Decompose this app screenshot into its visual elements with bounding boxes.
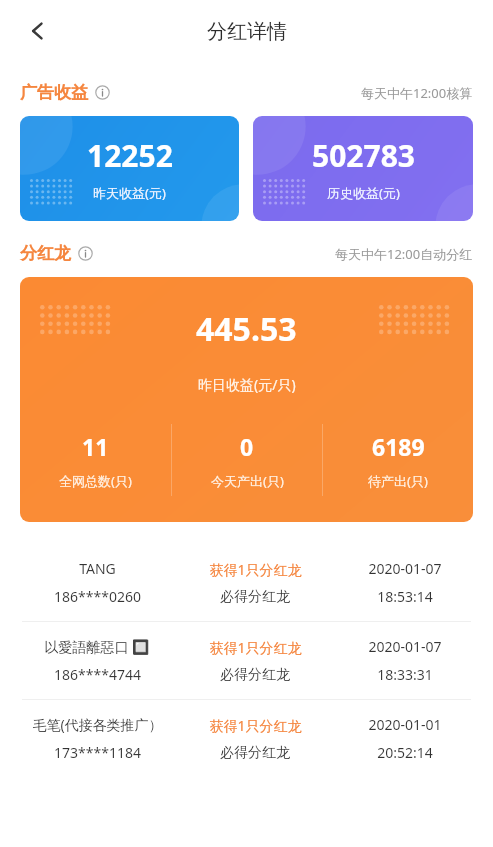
- button[interactable]: 12252: [20, 116, 239, 221]
- staticText: 分红详情: [207, 19, 287, 44]
- staticText: 历史收益(元): [327, 184, 400, 202]
- staticText: 以愛語離惡口 🔲: [44, 637, 150, 656]
- staticText: 每天中午12:00核算: [361, 84, 473, 102]
- staticText: 毛笔(代接各类推广）: [32, 715, 163, 734]
- button[interactable]: TANG: [0, 544, 493, 622]
- staticText: 每天中午12:00自动分红: [335, 245, 473, 263]
- staticText: 获得1只分红龙: [209, 560, 302, 579]
- button[interactable]: Back: [14, 7, 62, 55]
- button[interactable]: Info about 广告收益: [95, 85, 110, 100]
- staticText: 昨日收益(元/只): [198, 375, 296, 394]
- staticText: 0: [240, 431, 254, 462]
- staticText: 全网总数(只): [59, 472, 132, 490]
- staticText: 18:53:14: [377, 587, 433, 606]
- staticText: 20:52:14: [377, 743, 433, 762]
- staticText: TANG: [79, 559, 116, 578]
- staticText: 分红龙: [20, 243, 71, 264]
- staticText: 173****1184: [54, 743, 141, 762]
- staticText: 2020-01-07: [368, 637, 442, 656]
- staticText: 11: [82, 431, 109, 462]
- button[interactable]: 毛笔(代接各类推广）: [0, 700, 493, 777]
- staticText: 必得分红龙: [220, 744, 290, 762]
- button[interactable]: Info about 分红龙: [78, 246, 93, 261]
- staticText: 获得1只分红龙: [209, 638, 302, 657]
- staticText: 待产出(只): [368, 472, 428, 490]
- staticText: 502783: [312, 135, 415, 176]
- staticText: 2020-01-01: [368, 715, 442, 734]
- staticText: 186****0260: [54, 587, 141, 606]
- staticText: 必得分红龙: [220, 666, 290, 684]
- staticText: 必得分红龙: [220, 588, 290, 606]
- staticText: 2020-01-07: [368, 559, 442, 578]
- staticText: 今天产出(只): [211, 472, 284, 490]
- button[interactable]: 502783: [253, 116, 473, 221]
- staticText: 广告收益: [20, 82, 88, 103]
- staticText: 昨天收益(元): [93, 184, 166, 202]
- staticText: 获得1只分红龙: [209, 716, 302, 735]
- staticText: 18:33:31: [377, 665, 433, 684]
- staticText: 6189: [372, 431, 425, 462]
- staticText: 445.53: [196, 307, 297, 351]
- staticText: 12252: [87, 135, 173, 176]
- button[interactable]: 445.53: [20, 277, 473, 522]
- staticText: 186****4744: [54, 665, 141, 684]
- button[interactable]: 以愛語離惡口 🔲: [0, 622, 493, 700]
